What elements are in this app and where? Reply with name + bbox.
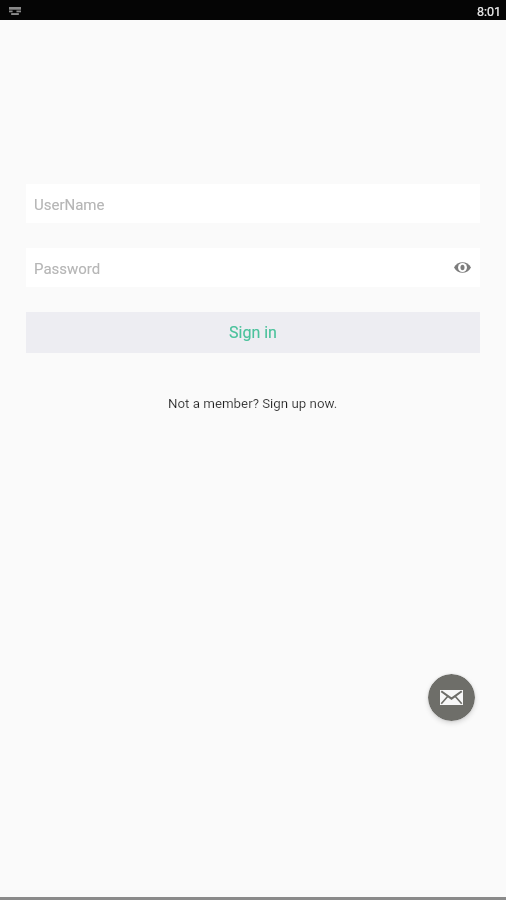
staticText: Not a member? Sign up now. bbox=[168, 396, 338, 412]
staticText: UserName bbox=[34, 196, 105, 214]
button[interactable]: Compose email bbox=[428, 674, 475, 721]
staticText: 8:01 bbox=[477, 4, 502, 19]
button[interactable]: Not a member? Sign up now. bbox=[162, 394, 344, 414]
button[interactable]: Sign in bbox=[26, 312, 480, 353]
button[interactable]: UserName bbox=[26, 184, 480, 223]
staticText: Sign in bbox=[229, 323, 277, 342]
staticText: Password bbox=[34, 260, 101, 278]
button[interactable]: Password bbox=[26, 248, 480, 287]
button[interactable]: Show password bbox=[448, 253, 476, 281]
